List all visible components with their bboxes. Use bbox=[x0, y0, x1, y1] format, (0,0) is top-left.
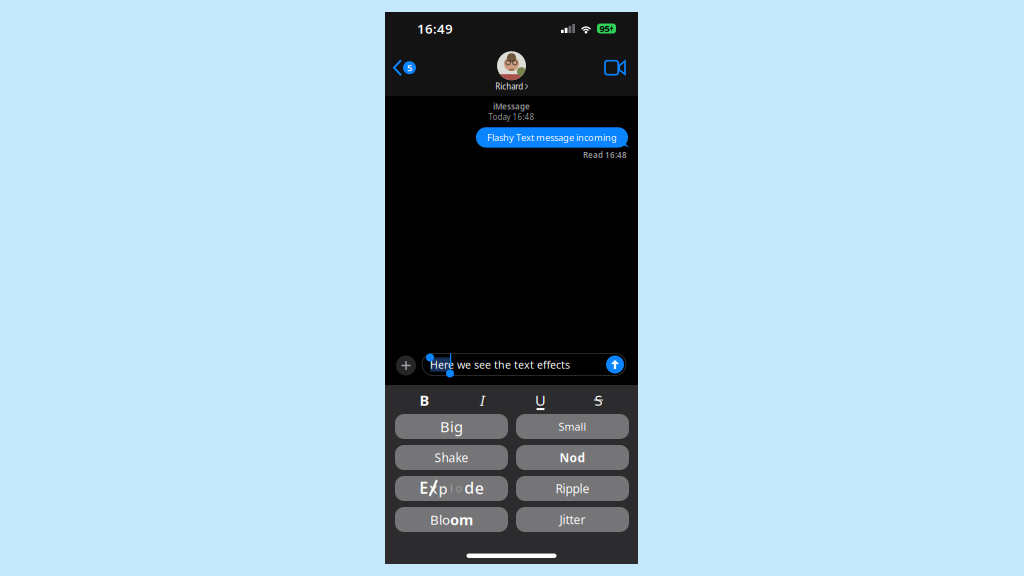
staticText: Read 16:48 bbox=[583, 150, 627, 160]
button[interactable]: Back to 5 conversations bbox=[387, 51, 424, 84]
staticText: o bbox=[456, 481, 462, 495]
staticText: U bbox=[535, 390, 546, 410]
staticText: I bbox=[480, 390, 485, 410]
staticText: d bbox=[464, 477, 474, 498]
button[interactable]: Send bbox=[606, 355, 624, 373]
button[interactable]: Explode bbox=[395, 476, 508, 501]
button[interactable]: Italic bbox=[453, 388, 511, 412]
staticText: Jitter bbox=[559, 511, 585, 527]
staticText: 95 bbox=[599, 22, 609, 35]
staticText: x bbox=[429, 478, 437, 498]
staticText: iMessage bbox=[493, 101, 530, 112]
button[interactable]: Bloom bbox=[395, 507, 508, 532]
staticText: Small bbox=[558, 419, 586, 434]
staticText: S bbox=[594, 390, 602, 410]
staticText: Here we see the text effects bbox=[430, 357, 570, 372]
staticText: Richard bbox=[495, 81, 523, 92]
staticText: p bbox=[438, 479, 447, 498]
button[interactable]: Jitter bbox=[516, 507, 629, 532]
staticText: Shake bbox=[434, 449, 468, 465]
button[interactable]: Strikethrough bbox=[569, 388, 627, 412]
button[interactable]: Richard bbox=[495, 49, 528, 92]
staticText: B bbox=[419, 390, 429, 410]
button[interactable]: Small bbox=[516, 414, 629, 439]
staticText: l bbox=[450, 481, 453, 496]
staticText: Big bbox=[440, 417, 463, 436]
button[interactable]: Add attachment bbox=[396, 355, 416, 375]
button[interactable]: Nod bbox=[516, 445, 629, 470]
staticText: Blo bbox=[430, 511, 450, 528]
button[interactable]: Big bbox=[395, 414, 508, 439]
button[interactable]: Shake bbox=[395, 445, 508, 470]
staticText: 16:49 bbox=[417, 20, 453, 37]
staticText: E bbox=[419, 477, 428, 498]
staticText: Flashy Text message incoming bbox=[487, 131, 617, 144]
button[interactable]: Ripple bbox=[516, 476, 629, 501]
staticText: Ripple bbox=[555, 480, 589, 496]
button[interactable]: Underline bbox=[511, 388, 569, 412]
button[interactable]: Bold bbox=[395, 388, 453, 412]
staticText: om bbox=[450, 510, 473, 529]
staticText: Today 16:48 bbox=[488, 112, 534, 122]
staticText: Nod bbox=[559, 449, 585, 465]
button[interactable]: FaceTime bbox=[595, 52, 635, 84]
staticText: 5 bbox=[407, 61, 412, 74]
staticText: e bbox=[475, 477, 484, 499]
